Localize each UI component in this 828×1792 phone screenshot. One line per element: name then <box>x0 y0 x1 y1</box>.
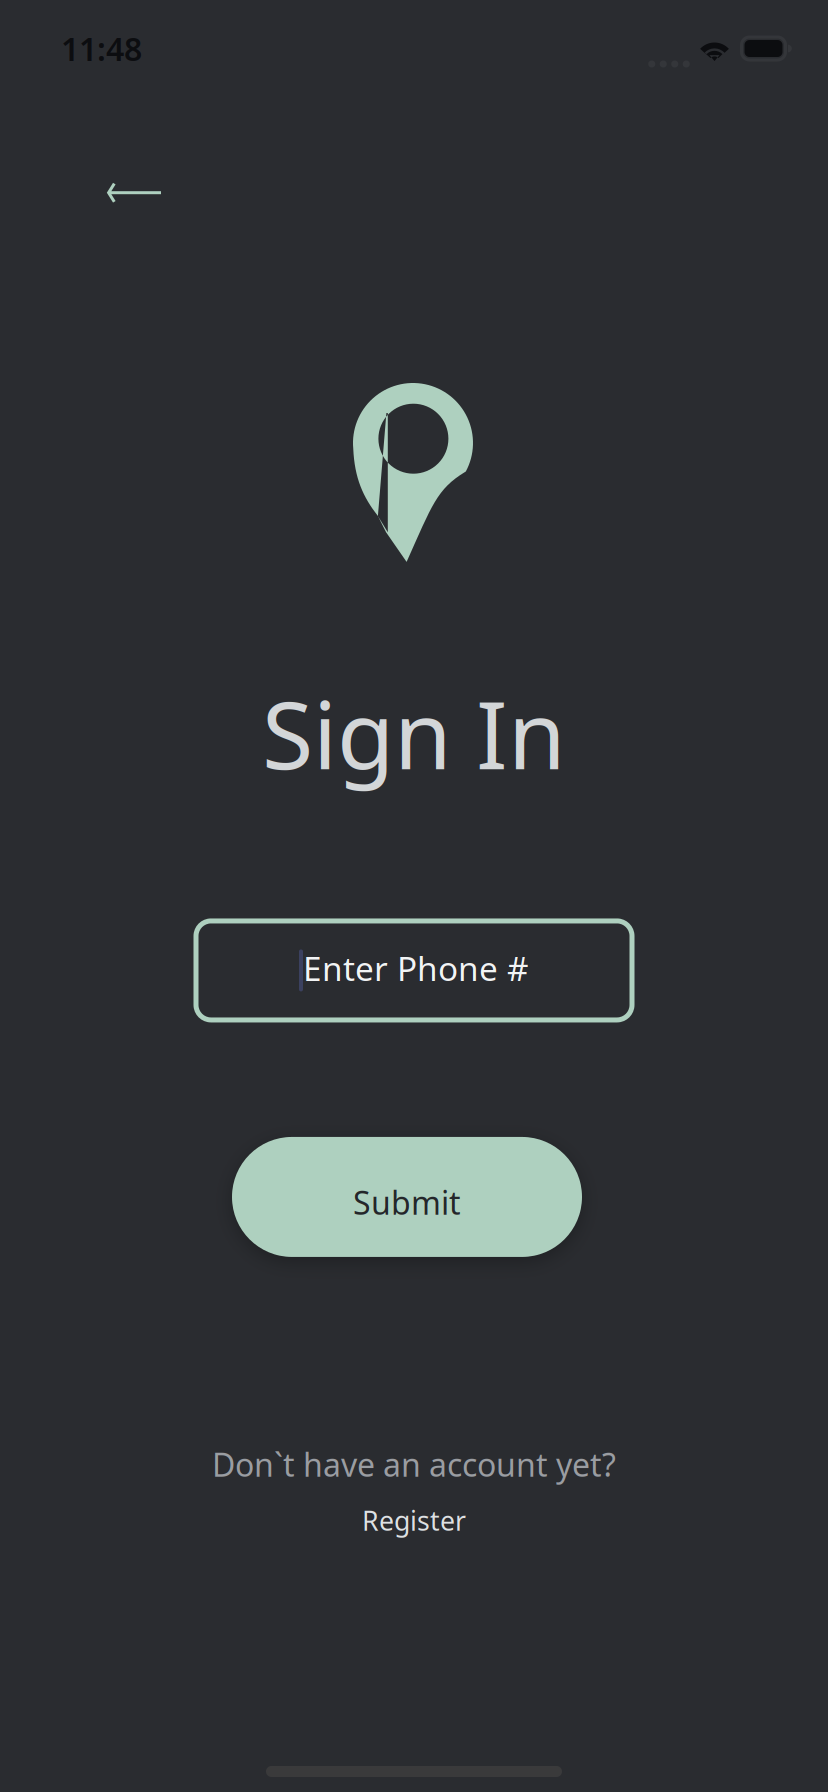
staticText: Don`t have an account yet? <box>212 1443 616 1486</box>
button[interactable]: Back <box>0 73 187 229</box>
staticText: Enter Phone # <box>303 946 529 990</box>
button[interactable]: Submit <box>232 1137 582 1257</box>
staticText: Sign In <box>262 671 566 795</box>
staticText: Submit <box>353 1181 461 1224</box>
staticText: 11:48 <box>61 27 142 70</box>
staticText: Register <box>362 1503 466 1538</box>
button[interactable]: Enter Phone # <box>196 921 632 1020</box>
button[interactable]: Register <box>348 1497 480 1544</box>
